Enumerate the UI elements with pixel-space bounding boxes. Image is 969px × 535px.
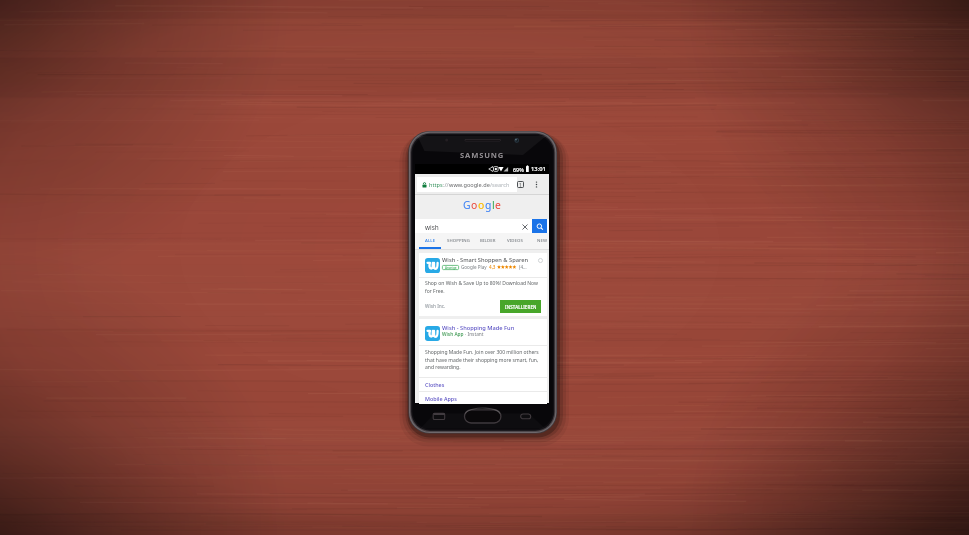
- staticText: BILDER: [480, 237, 496, 243]
- staticText: Shopping Made Fun. Join over 300 million…: [425, 349, 542, 370]
- staticText: VIDEOS: [507, 237, 524, 243]
- staticText: 1: [519, 182, 522, 188]
- button[interactable]: Why this ad: [538, 258, 543, 263]
- staticText: https: [429, 181, 443, 189]
- staticText: Wish Inc.: [425, 303, 446, 310]
- staticText: G: [463, 198, 471, 212]
- staticText: e: [495, 198, 501, 212]
- staticText: Clothes: [425, 381, 445, 388]
- button[interactable]: Tabs: [515, 179, 526, 190]
- staticText: (4…: [519, 264, 527, 270]
- staticText: Wish - Shopping Made Fun: [442, 324, 515, 332]
- button[interactable]: Search: [532, 219, 547, 234]
- staticText: INSTALLIEREN: [505, 304, 537, 310]
- staticText: 69%: [513, 166, 524, 173]
- button[interactable]: NEW: [529, 233, 555, 250]
- staticText: 13:01: [531, 165, 546, 173]
- staticText: g: [485, 198, 492, 212]
- button[interactable]: Clothes: [419, 377, 547, 391]
- button[interactable]: SHOPPING: [445, 233, 471, 250]
- button[interactable]: [419, 319, 547, 404]
- button[interactable]: VIDEOS: [502, 233, 528, 250]
- staticText: Mobile Apps: [425, 395, 457, 402]
- button[interactable]: https: [417, 177, 517, 192]
- button[interactable]: INSTALLIEREN: [500, 300, 541, 313]
- button[interactable]: ALLE: [417, 233, 443, 250]
- button[interactable]: BILDER: [475, 233, 501, 250]
- staticText: Shop on Wish & Save Up to 80%! Download …: [425, 280, 541, 294]
- button[interactable]: More options: [531, 179, 542, 190]
- staticText: ://: [443, 181, 449, 189]
- staticText: Anzeige: [445, 266, 457, 270]
- staticText: SAMSUNG: [460, 150, 505, 160]
- staticText: o: [471, 198, 478, 212]
- staticText: · Instant: [465, 331, 484, 338]
- staticText: l: [492, 198, 495, 212]
- button[interactable]: Mobile Apps: [419, 391, 547, 405]
- staticText: 4,3: [489, 264, 496, 270]
- staticText: o: [478, 198, 485, 212]
- staticText: Wish - Smart Shoppen & Sparen: [442, 256, 529, 264]
- staticText: www.google.de: [449, 181, 490, 189]
- button[interactable]: wish: [415, 219, 549, 234]
- staticText: Wish App: [442, 331, 464, 338]
- staticText: /search: [490, 181, 510, 189]
- button[interactable]: Wish - Smart Shoppen & Sparen: [419, 253, 547, 316]
- button[interactable]: Clear search: [519, 219, 531, 234]
- staticText: NEW: [537, 237, 548, 243]
- staticText: SHOPPING: [447, 237, 470, 243]
- staticText: ALLE: [425, 237, 436, 243]
- staticText: Google Play: [461, 264, 487, 270]
- staticText: wish: [425, 223, 439, 232]
